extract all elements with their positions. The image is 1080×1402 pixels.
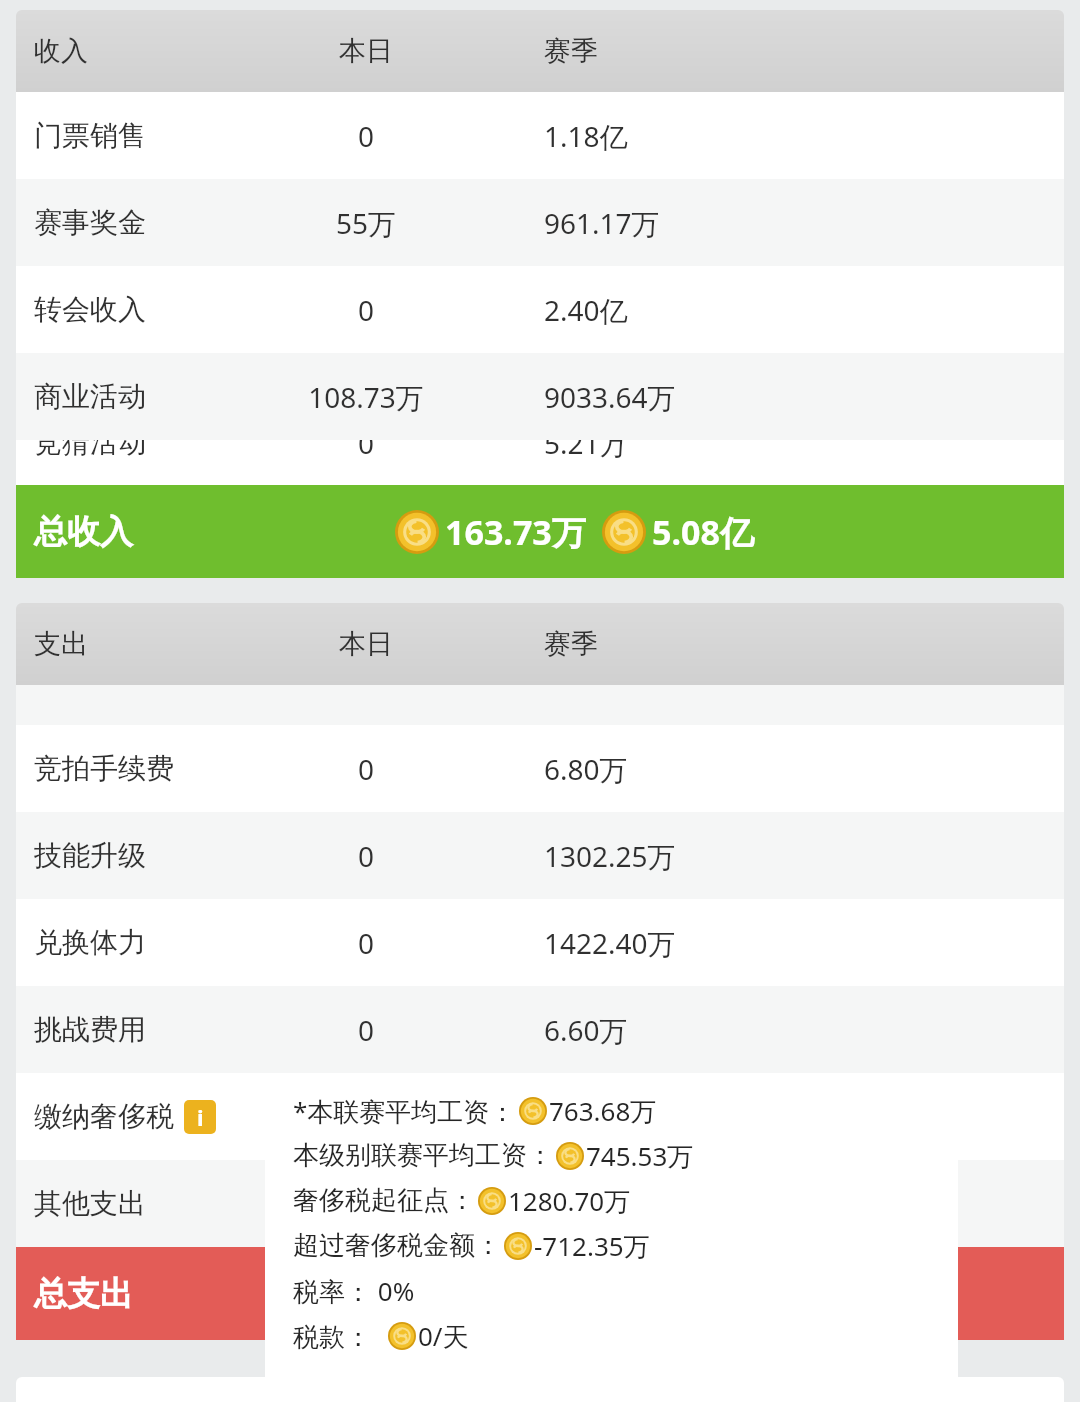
staticText: 6.80万 — [544, 750, 628, 788]
staticText: 1302.25万 — [544, 837, 676, 875]
staticText — [216, 1185, 516, 1223]
staticText: 0 — [216, 750, 516, 788]
staticText: 108.73万 — [216, 378, 516, 416]
button[interactable]: 转会收入 — [16, 266, 1064, 353]
staticText: 赛事奖金 — [34, 205, 146, 240]
button[interactable]: *本联赛平均工资： — [265, 1074, 958, 1390]
staticText: 本级别联赛平均工资： — [293, 1139, 553, 1172]
staticText: 1280.70万 — [508, 1183, 631, 1219]
staticText: 商业活动 — [34, 379, 146, 414]
staticText: 0 — [216, 837, 516, 875]
staticText: 税款： — [293, 1318, 385, 1354]
staticText: 9033.64万 — [544, 378, 676, 416]
button[interactable]: 竞拍手续费 — [16, 725, 1064, 812]
staticText: 6.60万 — [544, 1011, 628, 1049]
staticText: 税率： 0% — [293, 1273, 415, 1309]
staticText: 0 — [216, 1011, 516, 1049]
staticText: 763.68万 — [549, 1093, 657, 1129]
staticText: 0/天 — [418, 1318, 469, 1354]
staticText: 总支出 — [34, 1273, 133, 1315]
button[interactable]: 竞猜活动 — [16, 440, 1064, 485]
staticText — [216, 1098, 516, 1136]
staticText: 缴纳奢侈税 — [34, 1099, 174, 1134]
staticText: -712.35万 — [534, 1228, 650, 1264]
staticText: 兑换体力 — [34, 925, 146, 960]
button[interactable]: 门票销售 — [16, 92, 1064, 179]
staticText: 本日 — [216, 627, 516, 661]
staticText: 1422.40万 — [544, 924, 676, 962]
button[interactable]: 技能升级 — [16, 812, 1064, 899]
button[interactable]: 兑换体力 — [16, 899, 1064, 986]
staticText: 0 — [216, 440, 516, 462]
staticText: 赛季 — [544, 627, 598, 661]
staticText: 0 — [216, 291, 516, 329]
staticText: 5.21万 — [544, 440, 628, 462]
button[interactable]: Luxury tax info — [184, 1100, 216, 1134]
staticText: 奢侈税起征点： — [293, 1184, 475, 1217]
staticText: *本联赛平均工资： — [293, 1093, 516, 1129]
staticText: 55万 — [216, 204, 516, 242]
button[interactable]: 总支出 — [16, 1247, 1064, 1340]
button[interactable]: 商业活动 — [16, 353, 1064, 440]
staticText: 支出 — [34, 627, 216, 661]
staticText: i — [197, 1102, 204, 1132]
staticText: 5.08亿 — [652, 509, 754, 555]
staticText: 竞猜活动 — [34, 440, 146, 460]
staticText: 技能升级 — [34, 838, 146, 873]
staticText: 961.17万 — [544, 204, 660, 242]
button[interactable]: 缴纳奢侈税 — [16, 1073, 1064, 1160]
staticText: 2.40亿 — [544, 291, 628, 329]
staticText: 163.73万 — [445, 509, 586, 555]
staticText: 挑战费用 — [34, 1012, 146, 1047]
button[interactable]: 其他支出 — [16, 1160, 1064, 1247]
button[interactable]: 赛事奖金 — [16, 179, 1064, 266]
staticText: 1.18亿 — [544, 117, 628, 155]
staticText: 转会收入 — [34, 292, 146, 327]
staticText: 本日 — [216, 34, 516, 68]
staticText: 超过奢侈税金额： — [293, 1229, 501, 1262]
staticText: 收入 — [34, 34, 216, 68]
staticText: 745.53万 — [586, 1138, 694, 1174]
staticText: 赛季 — [544, 34, 598, 68]
staticText: 总收入 — [34, 511, 133, 553]
staticText: 门票销售 — [34, 118, 146, 153]
staticText: 0 — [216, 924, 516, 962]
staticText: 其他支出 — [34, 1186, 146, 1221]
staticText: 竞拍手续费 — [34, 751, 174, 786]
staticText: 0 — [216, 117, 516, 155]
button[interactable]: 总收入 — [16, 485, 1064, 578]
button[interactable]: 挑战费用 — [16, 986, 1064, 1073]
